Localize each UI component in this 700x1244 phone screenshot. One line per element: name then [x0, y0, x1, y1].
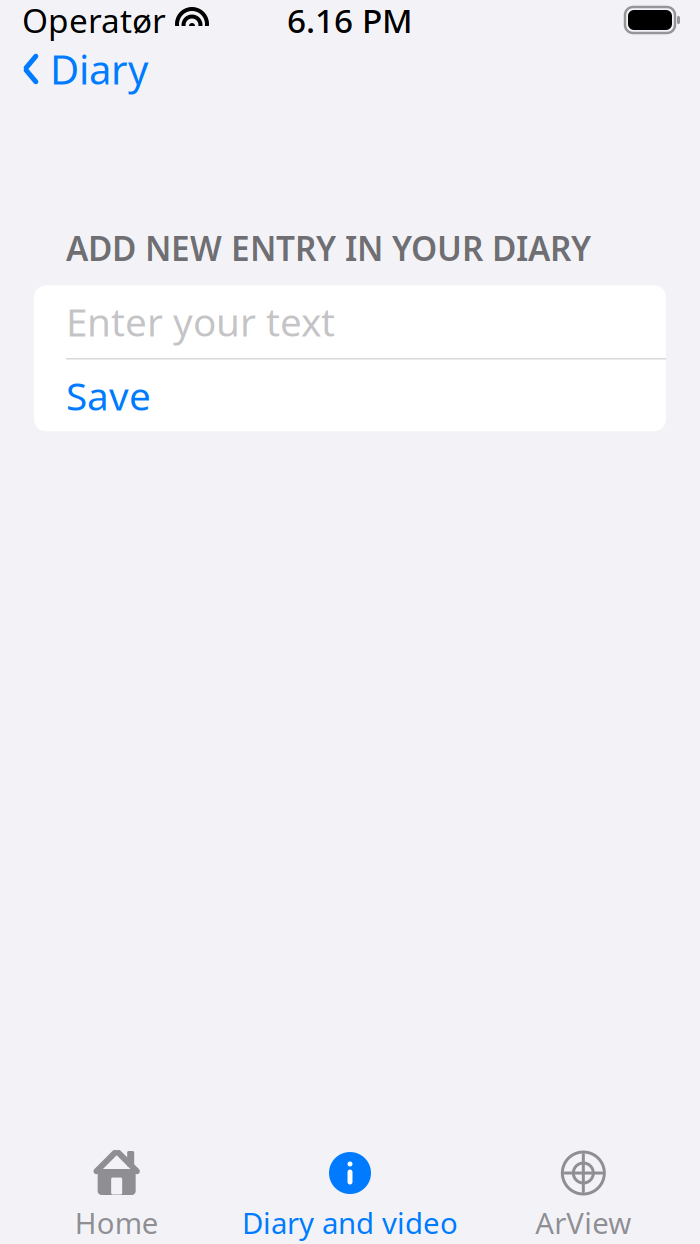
button[interactable]: Save: [34, 359, 666, 431]
staticText: Home: [75, 1203, 159, 1242]
button[interactable]: ArView: [467, 1140, 700, 1244]
staticText: ADD NEW ENTRY IN YOUR DIARY: [66, 226, 591, 270]
staticText: Operatør: [22, 0, 166, 42]
button[interactable]: Diary and video: [233, 1140, 467, 1244]
button[interactable]: Diary: [0, 34, 148, 103]
button[interactable]: Home: [0, 1140, 233, 1244]
staticText: Save: [66, 370, 151, 421]
staticText: Enter your text: [66, 296, 335, 347]
staticText: Diary and video: [242, 1203, 458, 1242]
staticText: Diary: [50, 42, 148, 95]
staticText: 6.16 PM: [287, 0, 413, 42]
staticText: ArView: [535, 1203, 631, 1242]
